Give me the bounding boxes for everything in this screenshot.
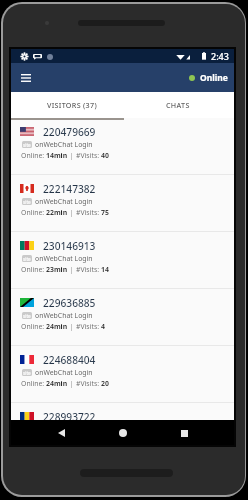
button[interactable]: 228993722 [11,403,234,420]
staticText: 220479669 [43,125,96,139]
staticText: onWebChat Login [35,254,93,263]
staticText: onWebChat Login [35,197,93,206]
staticText: 24min [46,379,68,388]
staticText: Online: [21,151,46,160]
button[interactable]: Recent apps [172,421,196,445]
staticText: CHATS [166,100,190,110]
button[interactable]: 220479669 [11,118,234,174]
staticText: 229636885 [43,296,96,310]
staticText: #Visits: [76,265,101,274]
staticText: #Visits: [76,151,101,160]
staticText: site [23,199,31,205]
button[interactable]: Online [185,68,234,88]
staticText: onWebChat Login [35,140,93,149]
staticText: Online: [21,379,46,388]
staticText: 24min [46,322,68,331]
staticText: #Visits: [76,379,101,388]
staticText: 224688404 [43,353,96,367]
button[interactable]: VISITORS (37) [11,92,122,118]
staticText: 14min [46,151,68,160]
staticText: 20 [101,379,109,388]
staticText: 228993722 [43,410,96,424]
staticText: 75 [101,208,109,217]
button[interactable]: 224688404 [11,346,234,402]
staticText: | [68,151,76,160]
staticText: 40 [101,151,109,160]
staticText: Online: [21,322,46,331]
staticText: 14 [101,265,109,274]
staticText: | [68,265,76,274]
staticText: Online: [21,208,46,217]
staticText: | [68,208,76,217]
staticText: VISITORS (37) [47,100,97,110]
staticText: onWebChat Login [35,311,93,320]
button[interactable]: 229636885 [11,289,234,345]
staticText: 25min [46,436,68,445]
staticText: onWebChat Login [35,368,93,377]
button[interactable]: 222147382 [11,175,234,231]
staticText: #Visits: [76,208,101,217]
staticText: Online [200,72,228,84]
staticText: 222147382 [43,182,96,196]
staticText: 23min [46,265,68,274]
button[interactable]: Back [49,421,73,445]
staticText: site [23,370,31,376]
staticText: Online: [21,265,46,274]
staticText: | [68,322,76,331]
button[interactable]: 230146913 [11,232,234,288]
staticText: 2:43 [211,50,229,62]
button[interactable]: Home [111,421,135,445]
staticText: 4 [101,322,105,331]
staticText: onWebChat Login [35,425,93,434]
staticText: site [23,313,31,319]
staticText: #Visits: [76,322,101,331]
staticText: site [23,142,31,148]
button[interactable]: Open navigation menu [14,66,38,90]
staticText: | [68,379,76,388]
staticText: site [23,256,31,262]
staticText: 230146913 [43,239,96,253]
staticText: 22min [46,208,68,217]
button[interactable]: CHATS [122,92,234,118]
